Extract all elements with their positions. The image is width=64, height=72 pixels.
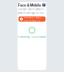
button[interactable]: Account <box>42 4 46 6</box>
staticText: Everything is protected <box>18 36 46 39</box>
staticText: Face & Mobile ID <box>18 3 46 7</box>
staticText: Protect your account <box>24 16 43 19</box>
button[interactable]: Protect your account <box>18 16 45 22</box>
staticText: Turn on Face ID <box>24 19 40 22</box>
staticText: Security settings for this device <box>17 12 46 15</box>
staticText: Use your face or phone to sign in <box>17 8 46 11</box>
